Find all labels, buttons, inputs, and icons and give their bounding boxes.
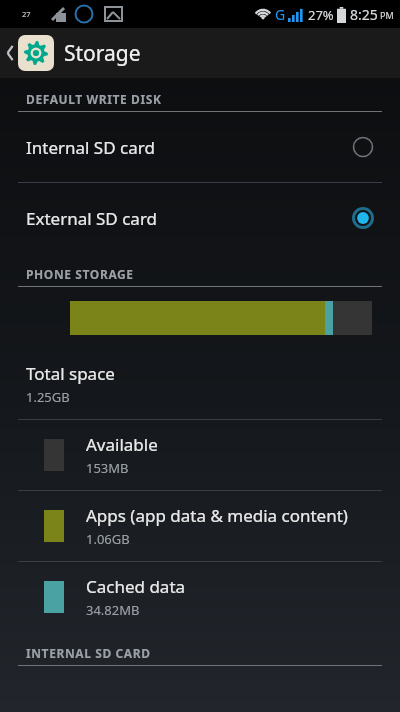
staticText: G xyxy=(275,5,286,24)
staticText: PM xyxy=(380,9,394,21)
staticText: PHONE STORAGE xyxy=(26,266,134,282)
button[interactable]: Total space xyxy=(0,349,400,419)
button[interactable]: Back to Settings xyxy=(0,28,400,78)
staticText: External SD card xyxy=(26,207,352,230)
staticText: 1.06GB xyxy=(86,530,130,548)
staticText: INTERNAL SD CARD xyxy=(26,645,151,661)
staticText: 27 xyxy=(22,9,31,19)
staticText: Total space xyxy=(26,362,115,385)
staticText: 153MB xyxy=(86,459,129,477)
button[interactable]: Apps (app data & media content) xyxy=(0,491,400,561)
staticText: Available xyxy=(86,433,158,456)
staticText: Storage xyxy=(64,39,141,68)
button[interactable]: Internal SD card xyxy=(0,112,400,182)
staticText: 34.82MB xyxy=(86,601,140,619)
button[interactable]: Available xyxy=(0,420,400,490)
staticText: Apps (app data & media content) xyxy=(86,504,348,527)
button[interactable]: External SD card xyxy=(0,183,400,253)
button[interactable]: Cached data xyxy=(0,562,400,632)
staticText: 8:25 xyxy=(350,5,378,24)
staticText: Internal SD card xyxy=(26,136,352,159)
staticText: DEFAULT WRITE DISK xyxy=(26,91,162,107)
staticText: Cached data xyxy=(86,575,186,598)
staticText: 1.25GB xyxy=(26,388,70,406)
staticText: 27% xyxy=(308,6,334,24)
